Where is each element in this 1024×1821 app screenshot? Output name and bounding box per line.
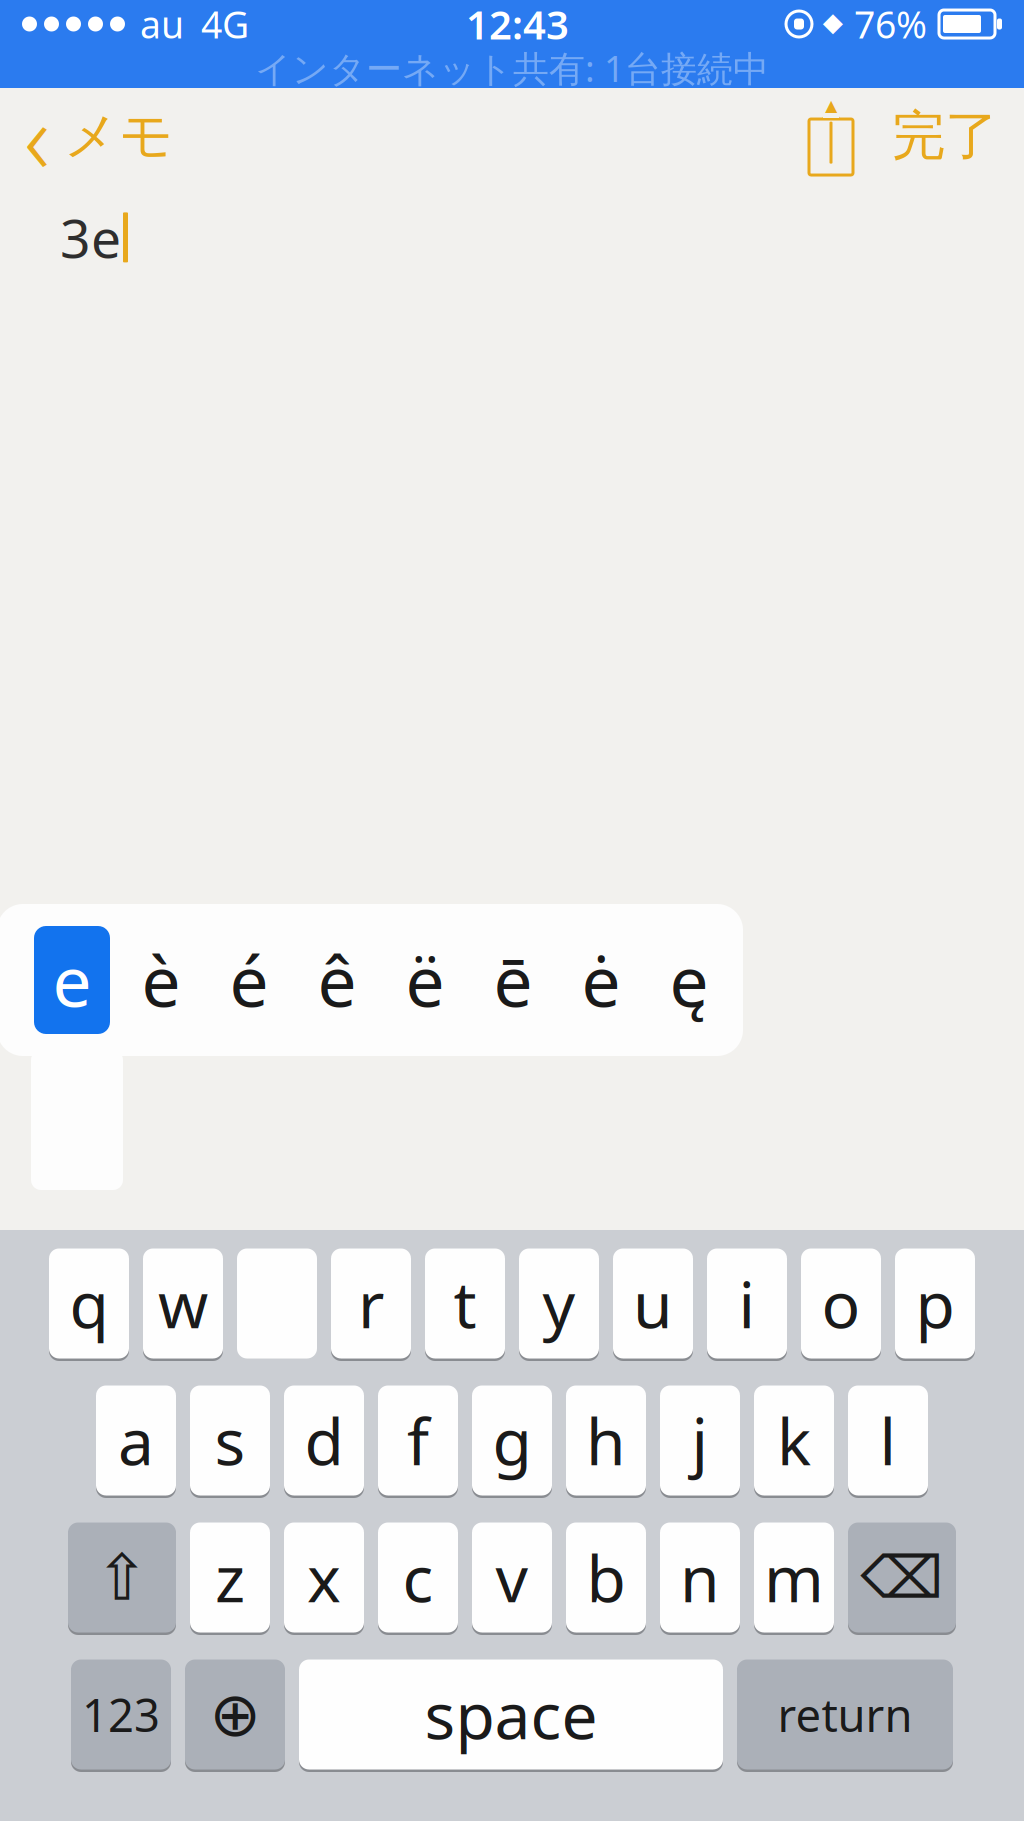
staticText: ê	[317, 934, 356, 1026]
staticText: é	[229, 934, 268, 1026]
button[interactable]: v	[472, 1520, 552, 1635]
staticText: ▲	[822, 94, 840, 122]
staticText: w	[158, 1261, 208, 1346]
staticText: インターネット共有: 1台接続中	[255, 44, 769, 92]
button[interactable]: s	[190, 1383, 270, 1498]
staticText: ē	[493, 934, 532, 1026]
button[interactable]: d	[284, 1383, 364, 1498]
staticText: b	[586, 1535, 625, 1620]
staticText: r	[358, 1261, 384, 1346]
button[interactable]: r	[331, 1246, 411, 1361]
staticText: t	[453, 1261, 476, 1346]
button[interactable]: Next keyboard	[185, 1657, 285, 1772]
staticText: m	[764, 1535, 824, 1620]
button[interactable]: q	[49, 1246, 129, 1361]
button[interactable]: a	[96, 1383, 176, 1498]
button[interactable]: o	[801, 1246, 881, 1361]
button[interactable]: t	[425, 1246, 505, 1361]
staticText: 4G	[201, 0, 249, 49]
staticText: ⇧	[95, 1541, 149, 1614]
button[interactable]: return	[737, 1657, 953, 1772]
button[interactable]: h	[566, 1383, 646, 1498]
staticText: g	[492, 1398, 531, 1483]
button[interactable]: k	[754, 1383, 834, 1498]
staticText: d	[304, 1398, 343, 1483]
button[interactable]: Shift	[68, 1520, 176, 1635]
staticText: y	[542, 1261, 575, 1346]
staticText: 3e	[60, 202, 121, 273]
staticText: j	[691, 1398, 708, 1483]
staticText: o	[821, 1261, 860, 1346]
staticText: ⌫	[860, 1544, 943, 1611]
staticText: 完了	[892, 103, 998, 169]
staticText: 12:43	[466, 0, 569, 50]
staticText: 76%	[854, 0, 927, 49]
button[interactable]: 123	[71, 1657, 171, 1772]
button[interactable]: b	[566, 1520, 646, 1635]
staticText: n	[680, 1535, 720, 1620]
staticText: ë	[405, 934, 444, 1026]
button[interactable]: ‹	[0, 88, 198, 184]
staticText: f	[407, 1398, 429, 1483]
button[interactable]: g	[472, 1383, 552, 1498]
staticText: space	[424, 1672, 597, 1757]
button[interactable]: x	[284, 1520, 364, 1635]
staticText: c	[402, 1535, 433, 1620]
button[interactable]: n	[660, 1520, 740, 1635]
button[interactable]: y	[519, 1246, 599, 1361]
button[interactable]: space	[299, 1657, 723, 1772]
staticText: i	[738, 1261, 755, 1346]
button[interactable]: u	[613, 1246, 693, 1361]
staticText: l	[879, 1398, 896, 1483]
staticText: u	[633, 1261, 673, 1346]
button[interactable]: Share	[796, 93, 866, 179]
staticText: メモ	[64, 103, 174, 169]
staticText: h	[586, 1398, 626, 1483]
staticText: ė	[581, 934, 620, 1026]
staticText: q	[69, 1261, 108, 1346]
button[interactable]: f	[378, 1383, 458, 1498]
staticText: z	[215, 1535, 245, 1620]
button[interactable]: 完了	[866, 88, 1024, 184]
button[interactable]: Delete	[848, 1520, 956, 1635]
staticText: au	[140, 0, 184, 49]
staticText: è	[141, 934, 180, 1026]
button[interactable]: p	[895, 1246, 975, 1361]
button[interactable]: c	[378, 1520, 458, 1635]
staticText: ‹	[24, 70, 50, 201]
staticText: ⬥	[822, 10, 843, 38]
staticText: v	[495, 1535, 528, 1620]
staticText: k	[777, 1398, 811, 1483]
staticText: return	[777, 1684, 912, 1745]
staticText: p	[915, 1261, 954, 1346]
staticText: 123	[82, 1684, 160, 1745]
staticText: ę	[669, 934, 708, 1026]
button[interactable]: m	[754, 1520, 834, 1635]
staticText: a	[118, 1398, 154, 1483]
staticText: s	[214, 1398, 245, 1483]
staticText: x	[307, 1535, 341, 1620]
button[interactable]: j	[660, 1383, 740, 1498]
staticText: e	[52, 934, 91, 1026]
button[interactable]: l	[848, 1383, 928, 1498]
button[interactable]: z	[190, 1520, 270, 1635]
staticText: ⊕	[209, 1680, 260, 1749]
button[interactable]: w	[143, 1246, 223, 1361]
button[interactable]: i	[707, 1246, 787, 1361]
